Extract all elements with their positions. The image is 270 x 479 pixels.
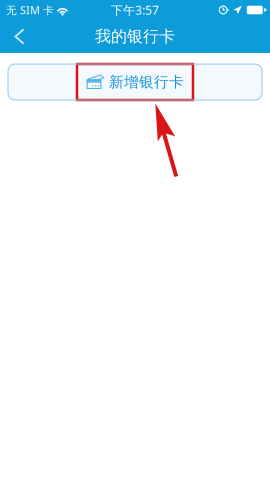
staticText: 新增银行卡 (109, 73, 184, 91)
button[interactable]: 新增银行卡 (8, 64, 262, 100)
button[interactable]: 返回 (0, 20, 56, 53)
staticText: 下午3:57 (111, 2, 159, 18)
staticText: 我的银行卡 (95, 27, 175, 46)
staticText: 无 SIM 卡 (6, 3, 54, 17)
